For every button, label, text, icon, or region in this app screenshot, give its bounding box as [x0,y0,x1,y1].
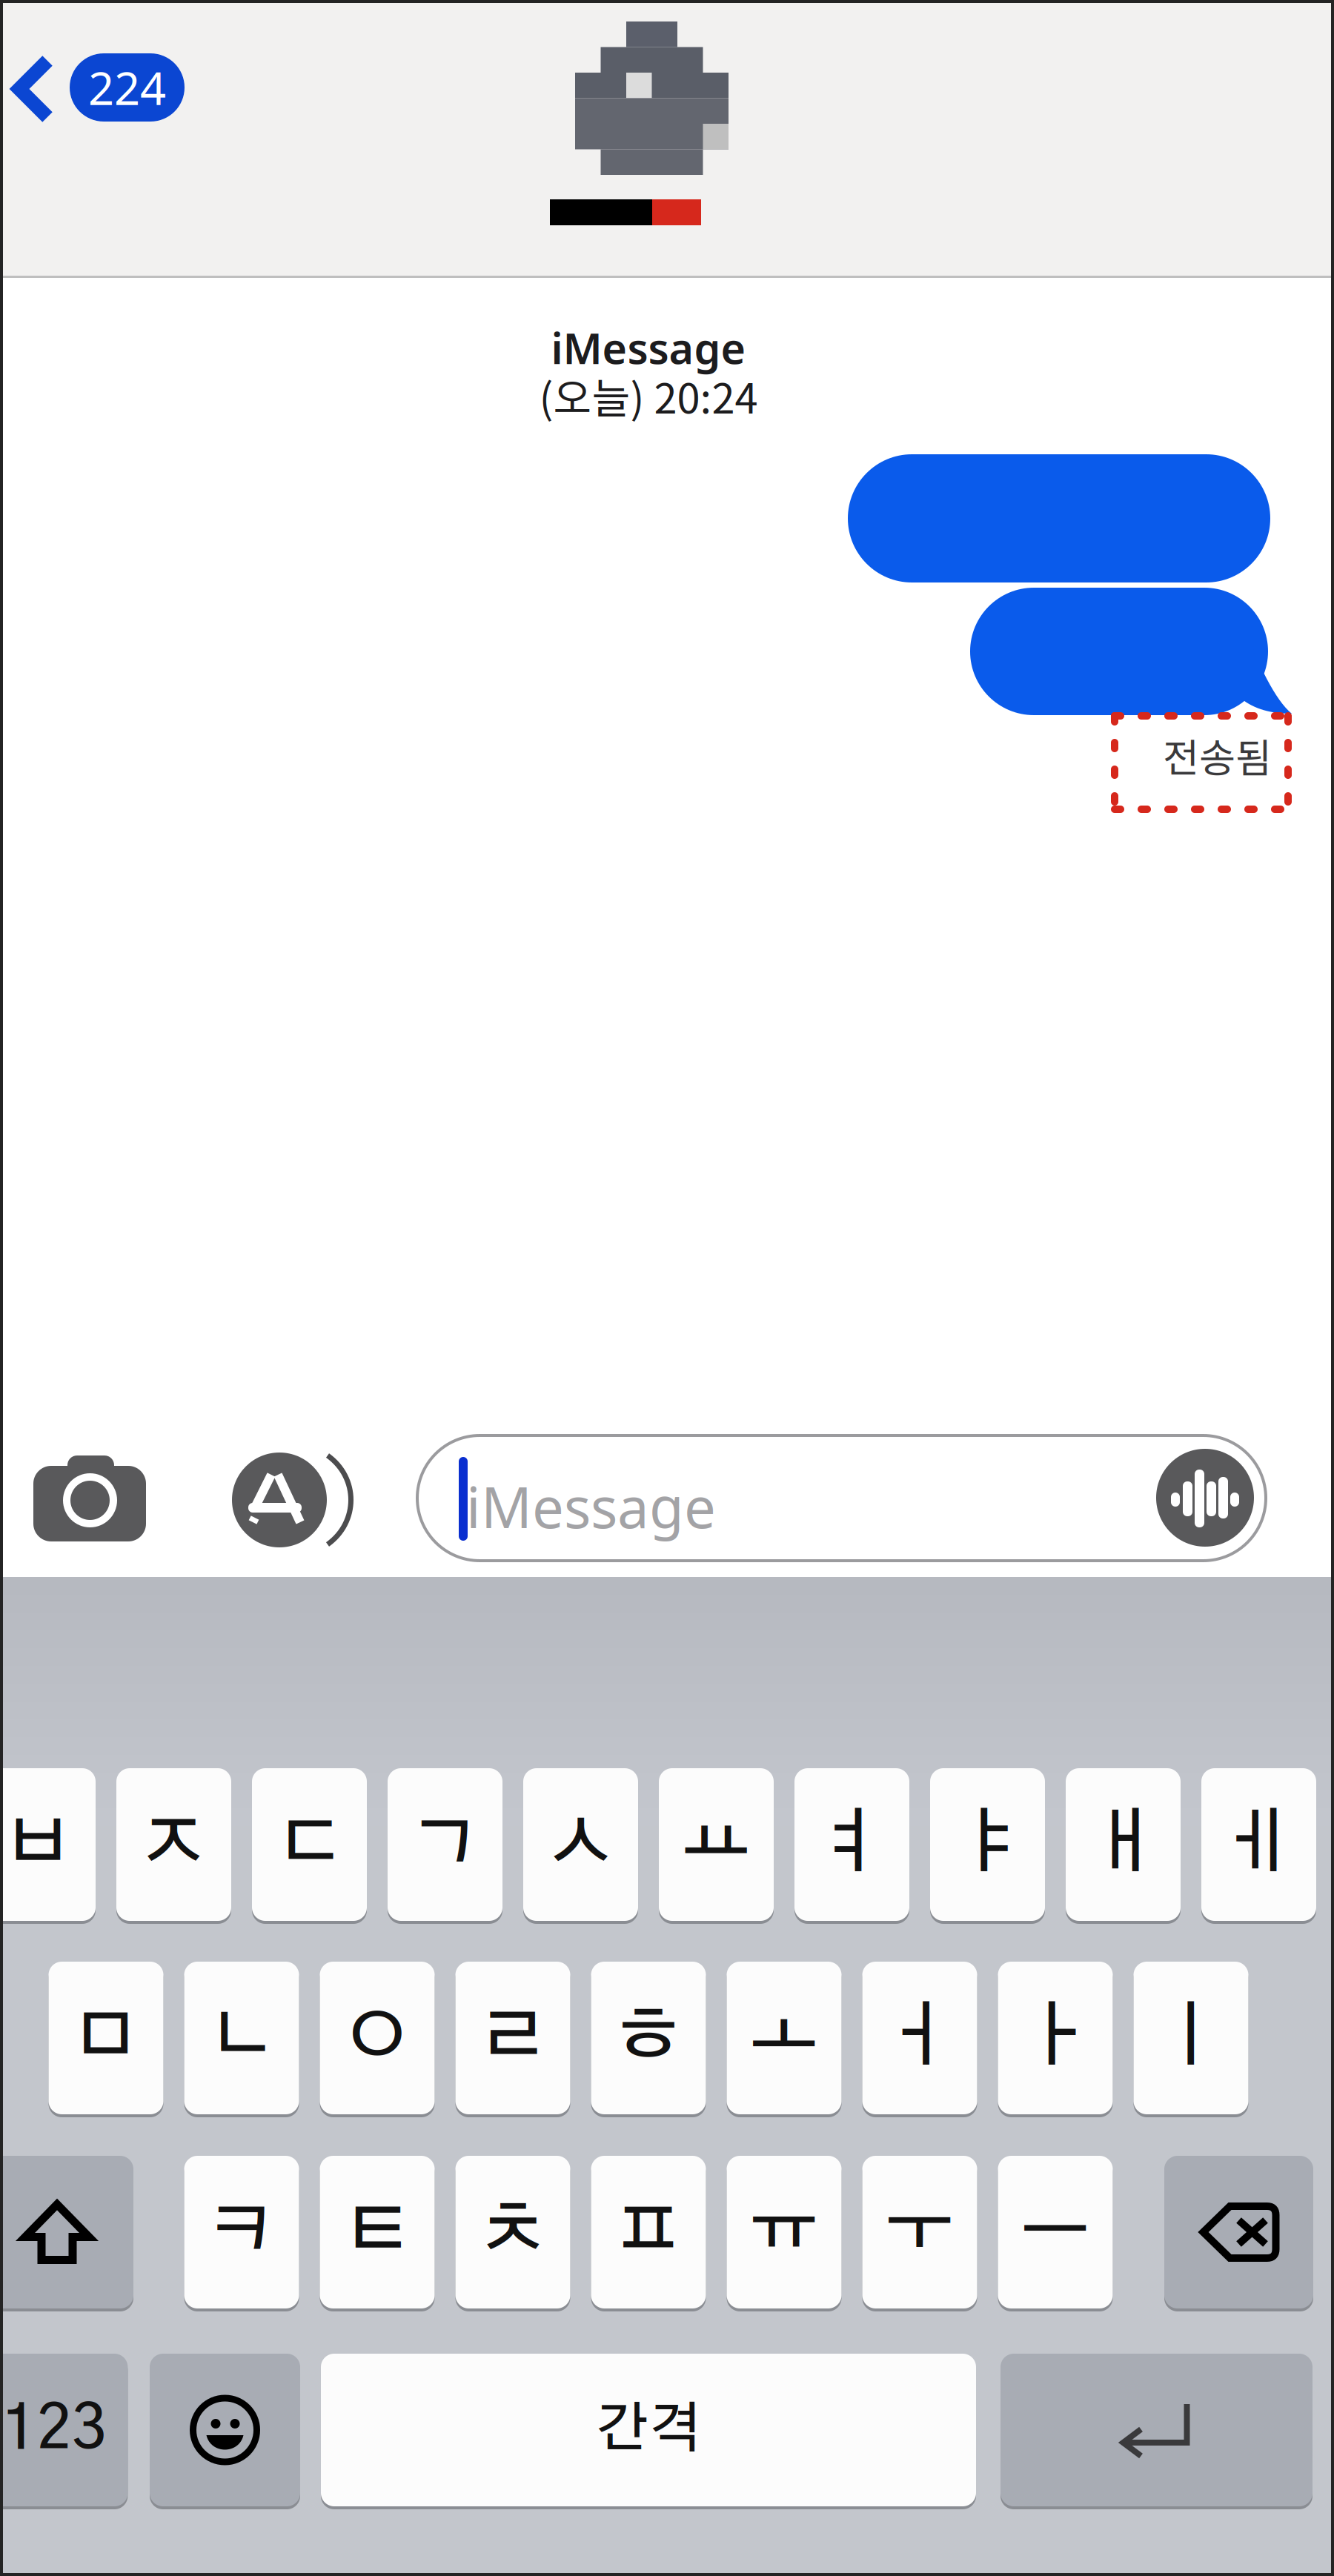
staticText: ㅠ [749,2197,820,2268]
button[interactable]: ㄱ [388,1768,502,1924]
staticText: ㅋ [206,2197,277,2268]
button[interactable]: ㅏ [998,1962,1113,2117]
button[interactable]: Return [1001,2354,1313,2509]
staticText: (오늘) 20:24 [539,365,758,425]
button[interactable]: ㅡ [998,2156,1113,2311]
button[interactable]: Camera [33,1455,146,1541]
staticText: ㅔ [1223,1809,1294,1880]
staticText: ㅇ [342,2002,413,2074]
staticText: ㅌ [342,2197,413,2268]
button[interactable]: ㅇ [320,1962,435,2117]
button[interactable]: ㅔ [1201,1768,1316,1924]
staticText: ㅓ [884,2002,955,2074]
button[interactable]: ㅌ [320,2156,435,2311]
staticText: ㅡ [1020,2197,1091,2268]
staticText: 전송됨 [1163,727,1272,784]
staticText: ㄴ [206,2002,277,2074]
button[interactable]: 간격 [321,2354,976,2509]
button[interactable]: ㄴ [184,1962,299,2117]
staticText: ㅜ [884,2197,955,2268]
staticText: ㅑ [952,1809,1023,1880]
staticText: ㅛ [681,1809,752,1880]
button[interactable]: ㅜ [862,2156,977,2311]
staticText: ㅗ [749,2002,820,2074]
button[interactable]: ㅕ [794,1768,909,1924]
button[interactable]: ㅂ [0,1768,96,1924]
button[interactable]: ㅑ [930,1768,1045,1924]
button[interactable]: Apps [225,1453,351,1547]
button[interactable]: ㄷ [252,1768,367,1924]
staticText: ㅐ [1088,1809,1159,1880]
button[interactable]: iMessage [417,1435,1266,1561]
button[interactable]: 123 [0,2354,128,2509]
button[interactable]: ㅎ [591,1962,706,2117]
staticText: ㄹ [477,2002,548,2074]
staticText: ㅍ [613,2197,684,2268]
staticText: ㅈ [138,1809,209,1880]
button[interactable]: ㅣ [1134,1962,1248,2117]
staticText: ㄷ [274,1809,345,1880]
button[interactable]: ㅛ [659,1768,774,1924]
button[interactable]: ㅐ [1066,1768,1181,1924]
button[interactable]: ㅗ [727,1962,842,2117]
staticText: iMessage [466,1469,716,1544]
staticText: 123 [2,2399,106,2461]
staticText: 간격 [596,2403,701,2457]
staticText: ㅁ [70,2002,142,2074]
staticText: iMessage [551,319,746,376]
staticText: ㅏ [1020,2002,1091,2074]
staticText: ㅊ [477,2197,548,2268]
button[interactable]: Record audio message [1156,1449,1254,1547]
staticText: ㅎ [613,2002,684,2074]
button[interactable]: Shift [0,2156,133,2311]
button[interactable]: Emoji [150,2354,300,2509]
staticText: ㅂ [3,1809,74,1880]
button[interactable]: Back, 224 unread [0,0,193,126]
staticText: 224 [88,57,166,118]
staticText: ㅣ [1155,2002,1227,2074]
button[interactable]: Delete [1164,2156,1313,2311]
staticText: ㄱ [409,1809,481,1880]
button[interactable]: ㅋ [184,2156,299,2311]
button[interactable]: ㅊ [455,2156,570,2311]
staticText: ㅅ [545,1809,616,1880]
button[interactable]: ㅍ [591,2156,706,2311]
button[interactable]: ㅈ [116,1768,231,1924]
button[interactable]: Contact details [0,0,1334,237]
button[interactable]: ㅁ [49,1962,163,2117]
button[interactable]: ㅓ [862,1962,977,2117]
button[interactable]: ㅅ [523,1768,638,1924]
button[interactable]: ㅠ [727,2156,842,2311]
button[interactable]: ㄹ [455,1962,570,2117]
staticText: ㅕ [816,1809,887,1880]
